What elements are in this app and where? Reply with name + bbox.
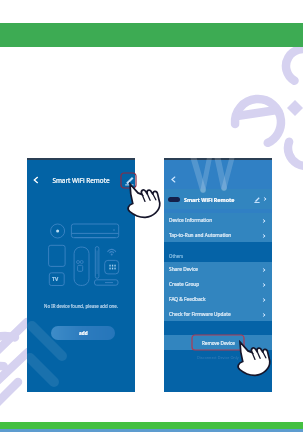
staticText: Create Group [169, 281, 200, 288]
button[interactable]: add [51, 326, 115, 340]
button[interactable]: Create Group [164, 277, 272, 292]
staticText: Tap-to-Run and Automation [169, 232, 232, 239]
staticText: Share Device [169, 266, 198, 273]
staticText: Smart WiFi Remote [184, 196, 235, 203]
staticText: Others [169, 253, 184, 259]
staticText: Device Information [169, 217, 213, 224]
button[interactable]: Edit name [123, 175, 134, 186]
staticText: Disconnect Device Only [197, 355, 239, 360]
button[interactable]: FAQ & Feedback [164, 292, 272, 307]
button[interactable]: Check for Firmware Update [164, 307, 272, 322]
button[interactable]: Back [168, 174, 179, 185]
button[interactable]: Tap-to-Run and Automation [164, 228, 272, 243]
staticText: TV [52, 276, 59, 283]
button[interactable]: Share Device [164, 262, 272, 277]
staticText: Smart WiFi Remote [27, 176, 135, 185]
staticText: FAQ & Feedback [169, 296, 206, 303]
staticText: No IR device found, please add one. [27, 303, 135, 309]
button[interactable]: Back [30, 174, 42, 186]
staticText: add [79, 330, 88, 336]
staticText: Remove Device [202, 340, 235, 346]
button[interactable]: Device Information [164, 213, 272, 228]
button[interactable]: Smart WiFi Remote [164, 189, 272, 209]
staticText: Check for Firmware Update [169, 311, 231, 318]
button[interactable]: Remove Device [164, 335, 272, 350]
